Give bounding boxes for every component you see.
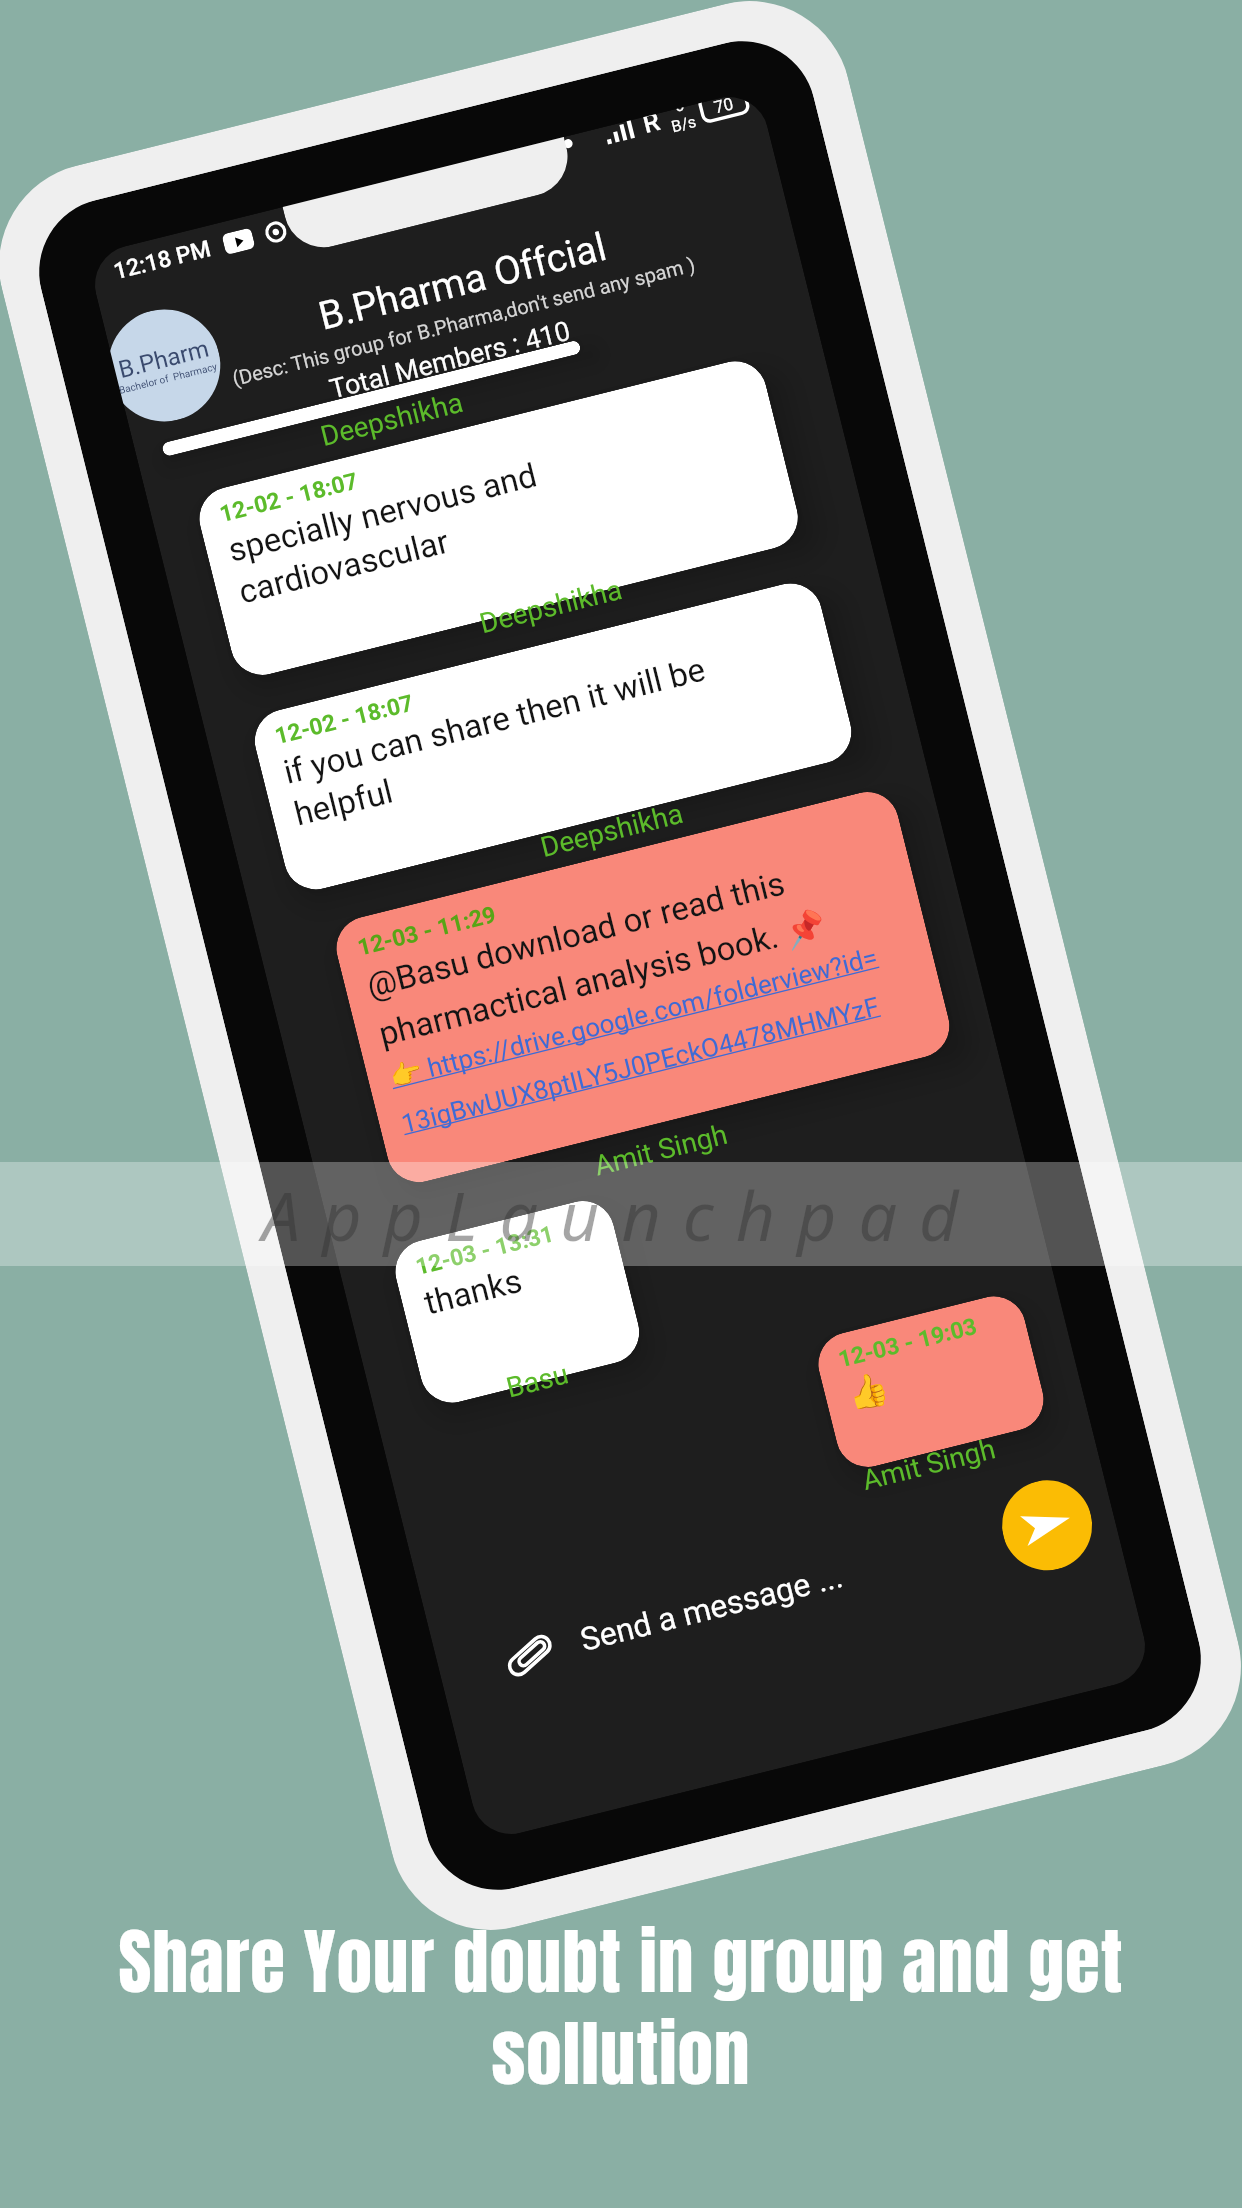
staticText: 70 [712, 95, 736, 117]
button[interactable]: Send [993, 1471, 1102, 1580]
staticText: AppLaunchpad [262, 1168, 981, 1261]
staticText: @Basu download or read this pharmactical… [363, 856, 831, 1054]
staticText: 12-03 - 13:31 [413, 1220, 557, 1281]
staticText: Amit Singh [591, 1118, 731, 1182]
staticText: Deepshikha [537, 797, 687, 864]
staticText: 👉 https://drive.google.com/folderview?id… [387, 942, 893, 1139]
button[interactable]: Group avatar [103, 297, 232, 432]
staticText: 12:18 PM [111, 235, 214, 285]
staticText: Send a message ... [576, 1557, 847, 1659]
staticText: Share Your doubt in group and get sollut… [91, 1908, 1151, 2107]
staticText: if you can share then it will be helpful [280, 649, 720, 834]
staticText: Amit Singh [859, 1432, 999, 1497]
staticText: B.Pharm [116, 335, 212, 384]
staticText: 12-03 - 11:29 [355, 901, 499, 961]
staticText: Deepshikha [317, 386, 467, 453]
staticText: 0 [675, 107, 686, 116]
staticText: Total Members : 410 [326, 315, 574, 405]
staticText: 12-03 - 19:03 [836, 1313, 980, 1373]
staticText: B.Pharma Offcial [314, 224, 611, 340]
staticText: (Desc: This group for B.Pharma,don't sen… [230, 252, 697, 390]
button[interactable]: 12-02 - 18:07 [248, 577, 858, 896]
staticText: Basu [503, 1357, 572, 1404]
staticText: Bachelor of Pharmacy [119, 361, 219, 397]
staticText: R [641, 113, 663, 139]
staticText: Deepshikha [476, 573, 626, 640]
button[interactable]: 12-03 - 11:29 [330, 785, 956, 1189]
staticText: 👍 [843, 1367, 893, 1415]
button[interactable]: 12-03 - 13:31 [389, 1194, 646, 1409]
staticText: 12-02 - 18:07 [217, 467, 361, 528]
staticText: 12-02 - 18:07 [272, 690, 416, 750]
staticText: thanks [420, 1261, 526, 1323]
button[interactable]: 12-03 - 19:03 [811, 1289, 1050, 1474]
staticText: specially nervous and cardiovascular [224, 455, 552, 611]
staticText: B/s [669, 112, 698, 136]
button[interactable]: Attach [498, 1627, 563, 1683]
button[interactable]: 12-02 - 18:07 [193, 354, 805, 682]
